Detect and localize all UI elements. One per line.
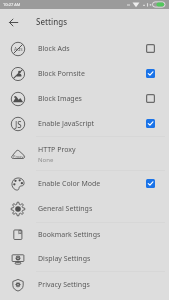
staticText: Block Images <box>38 94 82 104</box>
staticText: Settings <box>36 16 68 27</box>
staticText: None <box>38 156 54 164</box>
staticText: Block Ads <box>38 44 70 54</box>
staticText: Proxy <box>13 154 24 159</box>
staticText: 10:27 AM <box>3 2 21 7</box>
button[interactable]: Display Settings <box>0 247 169 271</box>
button[interactable]: Block Images <box>0 86 169 111</box>
staticText: Block Pornsite <box>38 69 85 79</box>
button[interactable]: Enable Color Mode <box>141 174 160 193</box>
staticText: Enable Color Mode <box>38 179 101 189</box>
staticText: Privacy Settings <box>38 280 90 290</box>
button[interactable]: Block Pornsite <box>141 64 160 83</box>
staticText: Ads <box>14 46 23 53</box>
button[interactable]: Enable JavaScript <box>141 114 160 133</box>
button[interactable]: Enable Color Mode <box>0 171 169 196</box>
staticText: JS <box>15 119 22 130</box>
button[interactable]: Ads <box>0 36 169 61</box>
button[interactable]: Block Images <box>141 89 160 108</box>
button[interactable]: JS <box>0 111 169 136</box>
button[interactable]: Block Pornsite <box>0 61 169 86</box>
staticText: HTTP Proxy <box>38 145 76 155</box>
button[interactable]: Privacy Settings <box>0 272 169 297</box>
button[interactable]: Back <box>3 12 24 33</box>
staticText: Enable JavaScript <box>38 119 95 129</box>
button[interactable]: General Settings <box>0 196 169 222</box>
button[interactable]: Bookmark Settings <box>0 223 169 247</box>
staticText: Bookmark Settings <box>38 230 101 240</box>
button[interactable]: Proxy <box>0 137 169 170</box>
button[interactable]: Block Ads <box>141 39 160 58</box>
staticText: Display Settings <box>38 254 91 264</box>
staticText: General Settings <box>38 204 93 214</box>
